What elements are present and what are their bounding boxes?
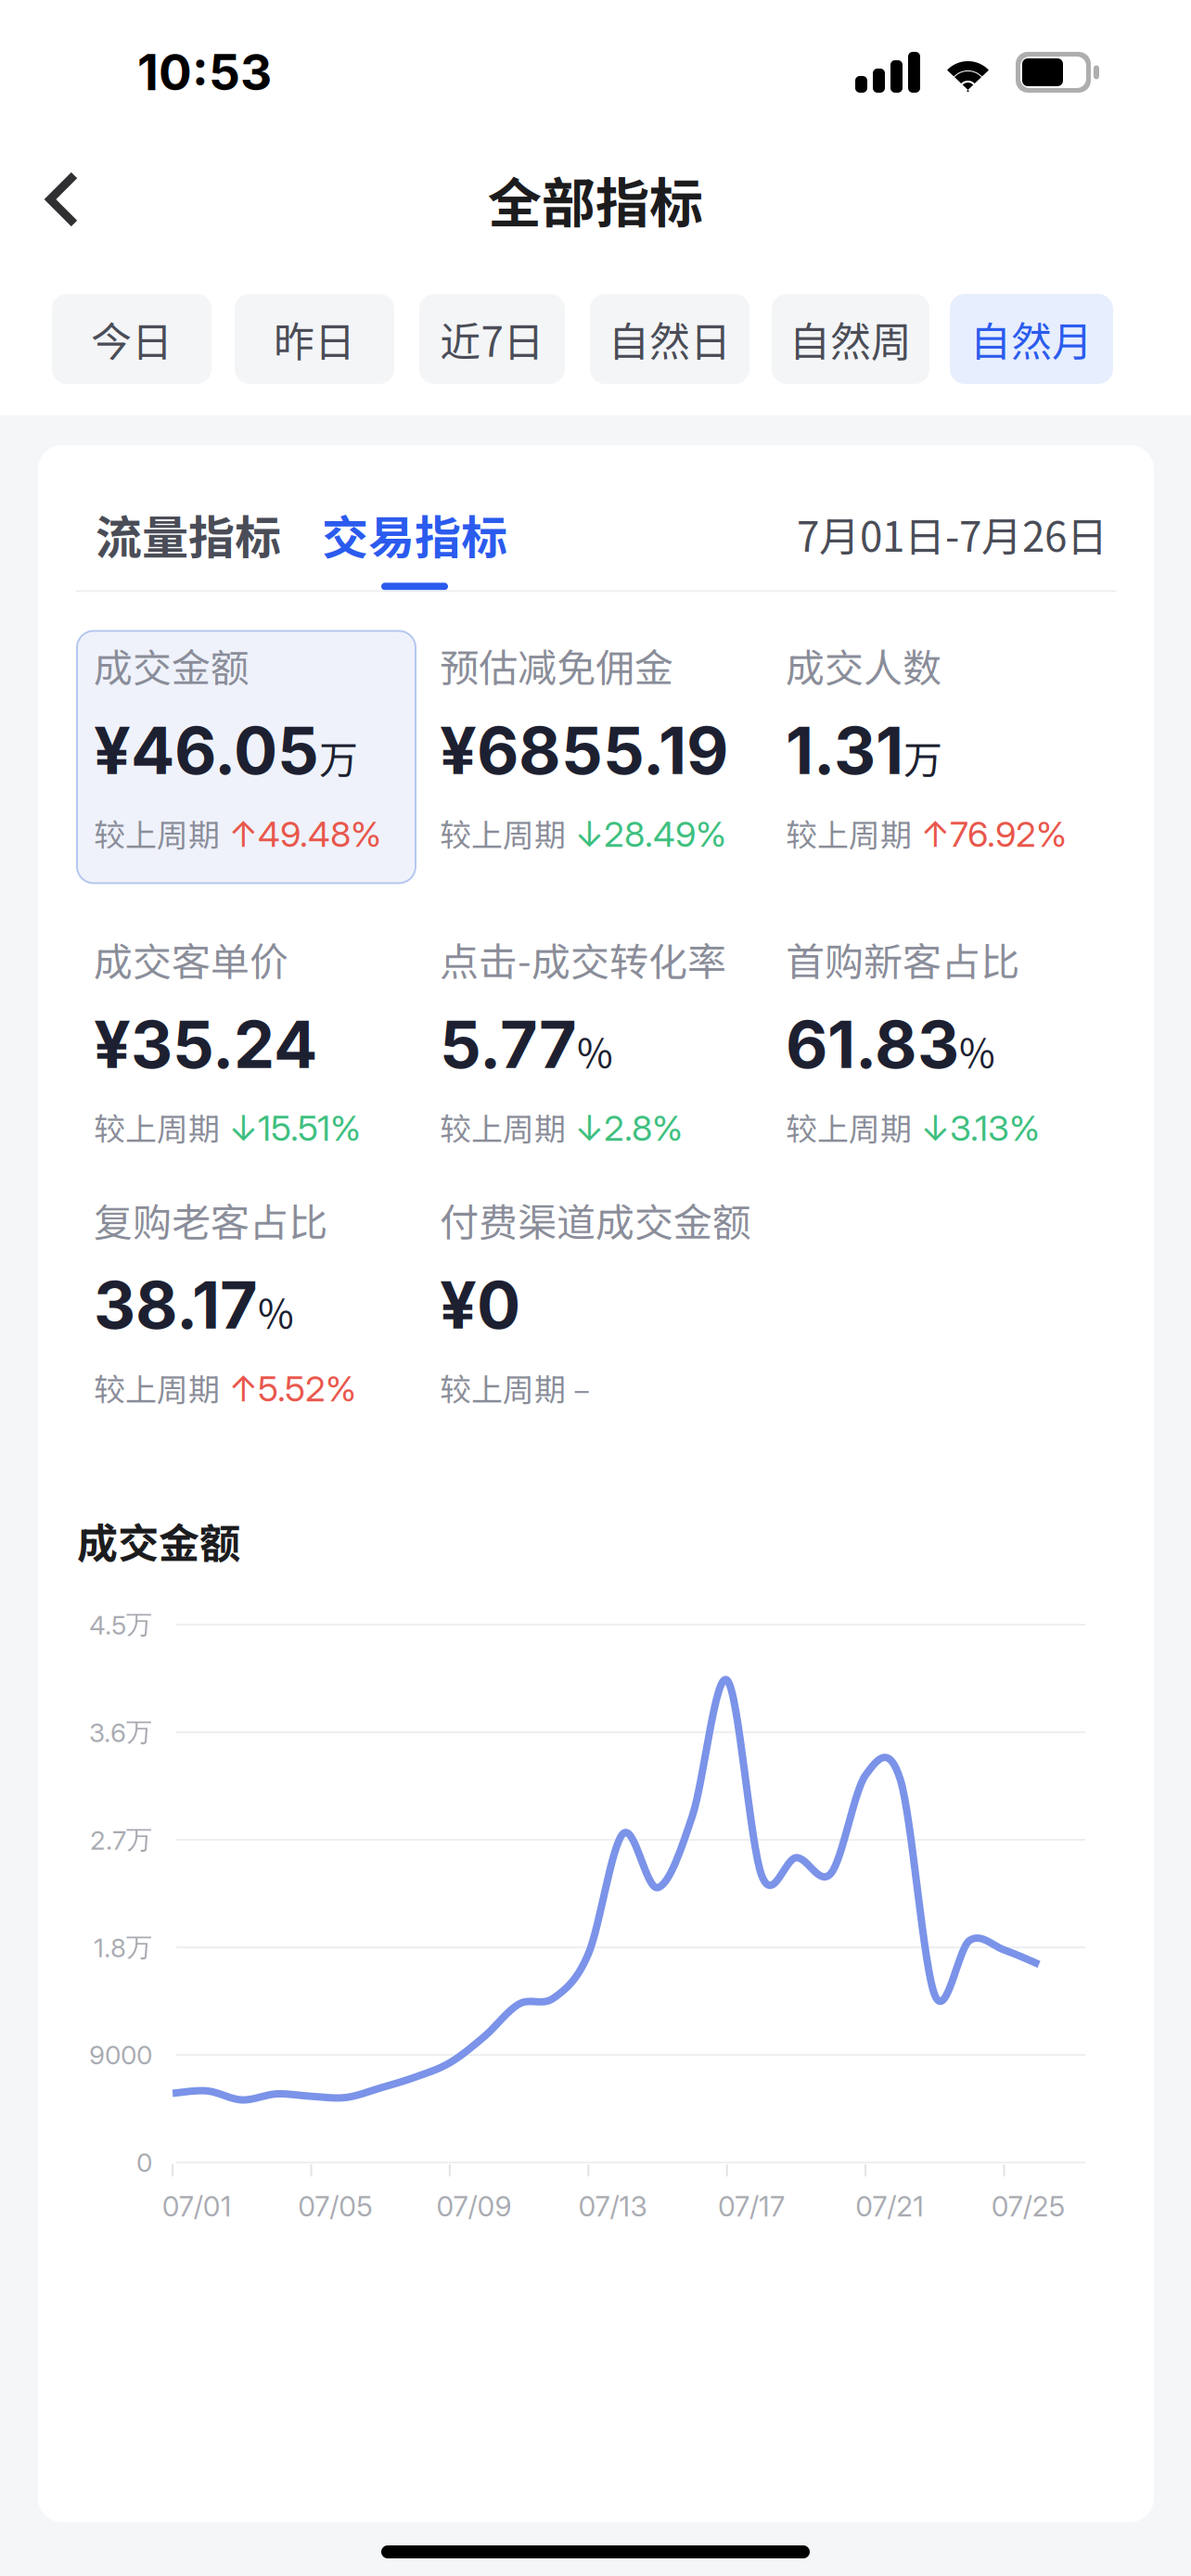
staticText: 61.83 <box>786 1005 959 1084</box>
staticText: 3.13% <box>950 1107 1040 1149</box>
staticText: 07/25 <box>991 2189 1065 2223</box>
staticText: 1.8万 <box>94 1931 152 1964</box>
staticText: 1.31 <box>786 711 903 790</box>
staticText: ↓ <box>566 1107 604 1149</box>
staticText: 5.77 <box>440 1005 577 1084</box>
staticText: ¥35.24 <box>94 1005 317 1084</box>
button[interactable]: 返回 <box>18 153 107 246</box>
staticText: 成交人数 <box>786 637 941 693</box>
staticText: 4.5万 <box>89 1608 152 1641</box>
staticText: 较上周期 <box>94 1104 220 1150</box>
staticText: 5.52% <box>258 1367 356 1410</box>
staticText: 万 <box>319 729 358 785</box>
staticText: 38.17 <box>94 1266 258 1344</box>
staticText: 全部指标 <box>488 160 703 238</box>
button[interactable]: 交易指标 <box>322 501 507 590</box>
staticText: ↑ <box>912 813 950 855</box>
staticText: 自然月 <box>970 309 1093 368</box>
button[interactable]: 复购老客占比 <box>77 1185 416 1446</box>
staticText: 07/01 <box>162 2189 232 2223</box>
staticText: 2.7万 <box>90 1824 152 1856</box>
staticText: 07/09 <box>437 2189 512 2223</box>
staticText: 3.6万 <box>89 1716 152 1749</box>
staticText: 28.49% <box>604 813 726 855</box>
staticText: ↓ <box>566 813 604 855</box>
staticText: 76.92% <box>950 813 1067 855</box>
button[interactable]: 预估减免佣金 <box>423 631 762 925</box>
button[interactable]: 今日 <box>52 294 211 384</box>
staticText: ↑ <box>220 813 258 855</box>
staticText: 49.48% <box>258 813 381 855</box>
staticText: 7月01日-7月26日 <box>797 504 1108 564</box>
button[interactable]: 点击-成交转化率 <box>423 925 762 1185</box>
staticText: 自然周 <box>789 309 912 368</box>
staticText: 较上周期 <box>94 810 220 856</box>
staticText: ¥0 <box>440 1266 520 1344</box>
staticText: 较上周期 <box>440 1104 566 1150</box>
staticText: 较上周期 <box>786 1104 912 1150</box>
staticText: 复购老客占比 <box>94 1192 327 1248</box>
staticText: ↑ <box>220 1367 258 1410</box>
staticText: 较上周期 <box>94 1365 220 1410</box>
staticText: – <box>566 1365 590 1410</box>
staticText: 昨日 <box>274 309 355 368</box>
button[interactable]: 近7日 <box>419 294 565 384</box>
staticText: 07/17 <box>718 2189 785 2223</box>
staticText: 自然日 <box>608 309 731 368</box>
button[interactable]: 自然周 <box>772 294 929 384</box>
button[interactable]: 自然月 <box>950 294 1113 384</box>
staticText: ↓ <box>912 1107 950 1149</box>
staticText: 预估减免佣金 <box>440 637 673 693</box>
staticText: 较上周期 <box>786 810 912 856</box>
staticText: 交易指标 <box>322 501 507 568</box>
staticText: 2.8% <box>604 1107 683 1149</box>
staticText: 成交客单价 <box>94 931 288 987</box>
staticText: 07/13 <box>578 2189 647 2223</box>
staticText: 今日 <box>91 309 173 368</box>
staticText: % <box>577 1023 613 1079</box>
staticText: ¥6855.19 <box>440 711 728 790</box>
button[interactable]: 成交金额 <box>77 631 416 925</box>
button[interactable]: 成交客单价 <box>77 925 416 1185</box>
staticText: 付费渠道成交金额 <box>440 1192 751 1248</box>
staticText: 成交金额 <box>77 1511 240 1570</box>
button[interactable]: 昨日 <box>235 294 394 384</box>
staticText: % <box>258 1283 294 1340</box>
button[interactable]: 流量指标 <box>96 501 281 568</box>
staticText: 15.51% <box>258 1107 361 1149</box>
staticText: 较上周期 <box>440 1365 566 1410</box>
staticText: 万 <box>903 729 942 785</box>
staticText: 07/05 <box>298 2189 373 2223</box>
button[interactable]: 成交人数 <box>769 631 1108 925</box>
staticText: 流量指标 <box>96 501 281 568</box>
staticText: 0 <box>136 2147 152 2178</box>
staticText: % <box>959 1023 995 1079</box>
staticText: 9000 <box>89 2039 152 2071</box>
staticText: 近7日 <box>440 309 544 368</box>
staticText: 首购新客占比 <box>786 931 1019 987</box>
button[interactable]: 付费渠道成交金额 <box>423 1185 762 1446</box>
button[interactable]: 首购新客占比 <box>769 925 1108 1185</box>
button[interactable]: 自然日 <box>590 294 749 384</box>
staticText: ¥46.05 <box>94 711 319 790</box>
staticText: 点击-成交转化率 <box>440 931 726 987</box>
staticText: ↓ <box>220 1107 258 1149</box>
staticText: 成交金额 <box>94 637 250 693</box>
staticText: 较上周期 <box>440 810 566 856</box>
staticText: 07/21 <box>855 2189 924 2223</box>
staticText: 10:53 <box>137 43 272 102</box>
